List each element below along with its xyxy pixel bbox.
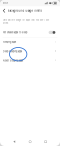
staticText: Background usage limits bbox=[8, 9, 42, 12]
staticText: often. bbox=[3, 22, 9, 24]
staticText: 9:41 bbox=[3, 2, 8, 4]
staticText: 2 bbox=[54, 59, 55, 62]
button[interactable]: Recent apps bbox=[45, 141, 47, 143]
staticText: Never sleeping apps bbox=[3, 59, 23, 62]
button[interactable]: Home bbox=[29, 141, 31, 143]
staticText: Deep sleeping apps bbox=[3, 50, 22, 53]
button[interactable]: Sleeping apps bbox=[0, 37, 60, 47]
staticText: 3 bbox=[54, 50, 55, 53]
button[interactable]: Back bbox=[13, 140, 16, 143]
button[interactable]: Put unused apps to sleep bbox=[0, 28, 60, 37]
staticText: Sleeping apps bbox=[3, 41, 16, 43]
button[interactable]: Never sleeping apps bbox=[0, 56, 60, 65]
staticText: Limit battery usage for apps that you do… bbox=[3, 19, 49, 21]
staticText: 1 bbox=[54, 41, 55, 43]
staticText: Put unused apps to sleep bbox=[3, 31, 27, 34]
button[interactable]: Deep sleeping apps bbox=[0, 47, 60, 56]
button[interactable]: Background usage limits bbox=[0, 6, 60, 15]
